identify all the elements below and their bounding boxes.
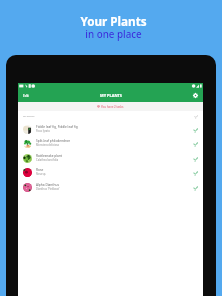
staticText: MY PLANTS (100, 93, 122, 98)
staticText: in one place (85, 28, 142, 41)
staticText: MY PLANTS (23, 115, 35, 118)
staticText: Alpha Dianthus (36, 183, 59, 187)
staticText: Split-leaf philodendron (36, 139, 71, 143)
button[interactable]: Water plant (191, 155, 199, 163)
button[interactable]: Settings (189, 89, 202, 102)
button[interactable]: Fiddle leaf fig, Fiddle leaf fig (18, 122, 203, 137)
button[interactable]: Split-leaf philodendron (18, 136, 203, 151)
staticText: Rosa sp. (36, 172, 47, 176)
button[interactable]: Sort (193, 114, 199, 120)
staticText: Monstera deliciosa (36, 143, 59, 147)
button[interactable]: You have 2 tasks (18, 102, 203, 111)
staticText: Rose (36, 168, 44, 172)
button[interactable]: Edit (18, 91, 34, 101)
button[interactable]: Alpha Dianthus (18, 180, 203, 195)
staticText: You have 2 tasks (101, 105, 124, 109)
button[interactable]: Water plant (191, 126, 199, 134)
staticText: Ficus lyrata (36, 129, 50, 133)
staticText: Edit (23, 94, 29, 98)
staticText: Calathea lancifolia (36, 158, 59, 162)
button[interactable]: Water plant (191, 184, 199, 192)
button[interactable]: Rose (18, 165, 203, 180)
button[interactable]: Water plant (191, 140, 199, 148)
button[interactable]: Water plant (191, 169, 199, 177)
staticText: Your Plants (80, 13, 147, 29)
staticText: Fiddle leaf fig, Fiddle leaf fig (36, 125, 78, 129)
button[interactable]: Rattlesnake plant (18, 151, 203, 166)
staticText: Dianthus 'Pinkbeat' (36, 187, 60, 191)
staticText: Rattlesnake plant (36, 154, 62, 158)
